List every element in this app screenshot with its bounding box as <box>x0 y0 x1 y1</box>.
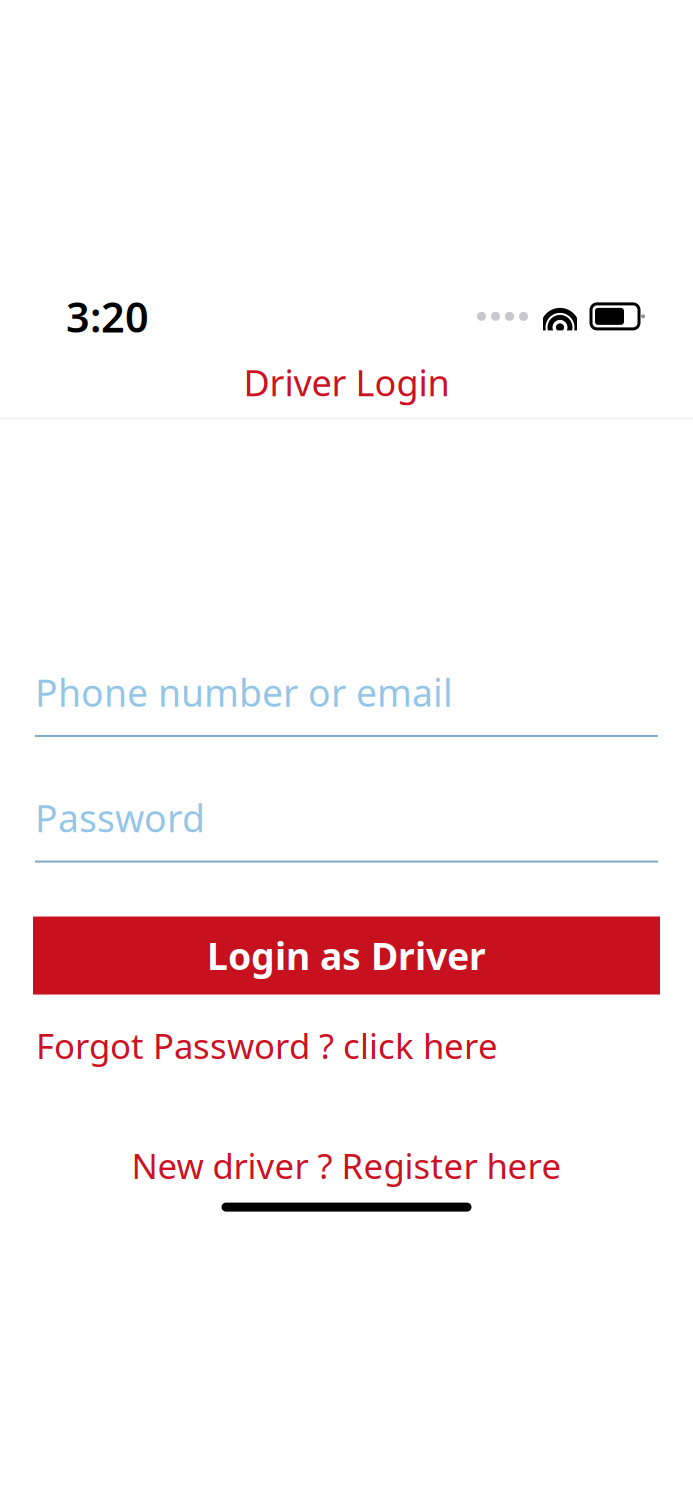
staticText: Phone number or email <box>35 667 453 717</box>
staticText: 3:20 <box>66 289 149 344</box>
staticText: Forgot Password ? click here <box>36 1022 498 1068</box>
staticText: New driver ? Register here <box>131 1143 561 1189</box>
staticText: Driver Login <box>243 358 449 406</box>
button[interactable]: New driver ? Register here <box>131 1137 561 1195</box>
button[interactable]: Forgot Password ? click here <box>36 1016 498 1074</box>
button[interactable]: Login as Driver <box>33 916 660 994</box>
staticText: Password <box>35 793 205 843</box>
staticText: Login as Driver <box>207 931 486 980</box>
